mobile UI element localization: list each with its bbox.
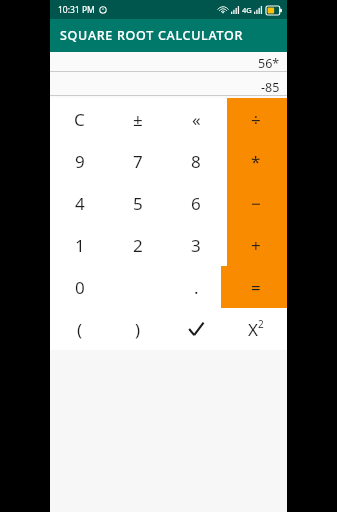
staticText: + (251, 234, 261, 257)
button[interactable]: 56* (50, 55, 287, 72)
button[interactable]: ( (50, 308, 109, 350)
staticText: ( (77, 318, 83, 341)
staticText: 8 (191, 150, 201, 173)
button[interactable]: = (225, 266, 287, 308)
button[interactable]: « (167, 98, 225, 140)
staticText: C (74, 108, 85, 131)
staticText: = (251, 276, 261, 299)
staticText: 5 (133, 192, 143, 215)
staticText: 9 (75, 150, 85, 173)
button[interactable]: Square root (167, 308, 225, 350)
staticText: − (251, 192, 261, 215)
button[interactable]: 8 (167, 140, 225, 182)
staticText: X (248, 318, 258, 341)
staticText: ÷ (251, 108, 261, 131)
button[interactable]: Square (225, 308, 287, 350)
staticText: « (192, 108, 201, 131)
button[interactable]: * (225, 140, 287, 182)
button[interactable]: 4 (50, 182, 109, 224)
staticText: 3 (191, 234, 201, 257)
button[interactable]: 2 (109, 224, 167, 266)
button[interactable]: SQUARE ROOT CALCULATOR (50, 19, 287, 52)
staticText: 10:31 PM (58, 4, 95, 16)
staticText: . (194, 276, 199, 299)
staticText: 4G (242, 5, 252, 15)
staticText: 56* (258, 55, 280, 71)
button[interactable]: ± (109, 98, 167, 140)
staticText: 4 (75, 192, 85, 215)
staticText: * (251, 150, 261, 173)
staticText: 2 (258, 317, 264, 331)
button[interactable]: 9 (50, 140, 109, 182)
button[interactable]: 7 (109, 140, 167, 182)
staticText: -85 (261, 79, 280, 95)
staticText: 2 (133, 234, 143, 257)
staticText: ) (135, 318, 141, 341)
button[interactable]: 3 (167, 224, 225, 266)
staticText: 0 (75, 276, 85, 299)
button[interactable]: + (225, 224, 287, 266)
button[interactable]: . (167, 266, 225, 308)
staticText: 1 (75, 234, 85, 257)
button[interactable]: 1 (50, 224, 109, 266)
button[interactable]: ÷ (225, 98, 287, 140)
staticText: 7 (133, 150, 143, 173)
button[interactable]: C (50, 98, 109, 140)
button[interactable]: − (225, 182, 287, 224)
button[interactable]: 5 (109, 182, 167, 224)
button[interactable]: ) (109, 308, 167, 350)
staticText: 6 (191, 192, 201, 215)
staticText: ± (133, 108, 143, 131)
button[interactable]: -85 (50, 79, 287, 96)
button[interactable]: 6 (167, 182, 225, 224)
button[interactable]: 0 (50, 266, 109, 308)
staticText: SQUARE ROOT CALCULATOR (60, 27, 244, 44)
